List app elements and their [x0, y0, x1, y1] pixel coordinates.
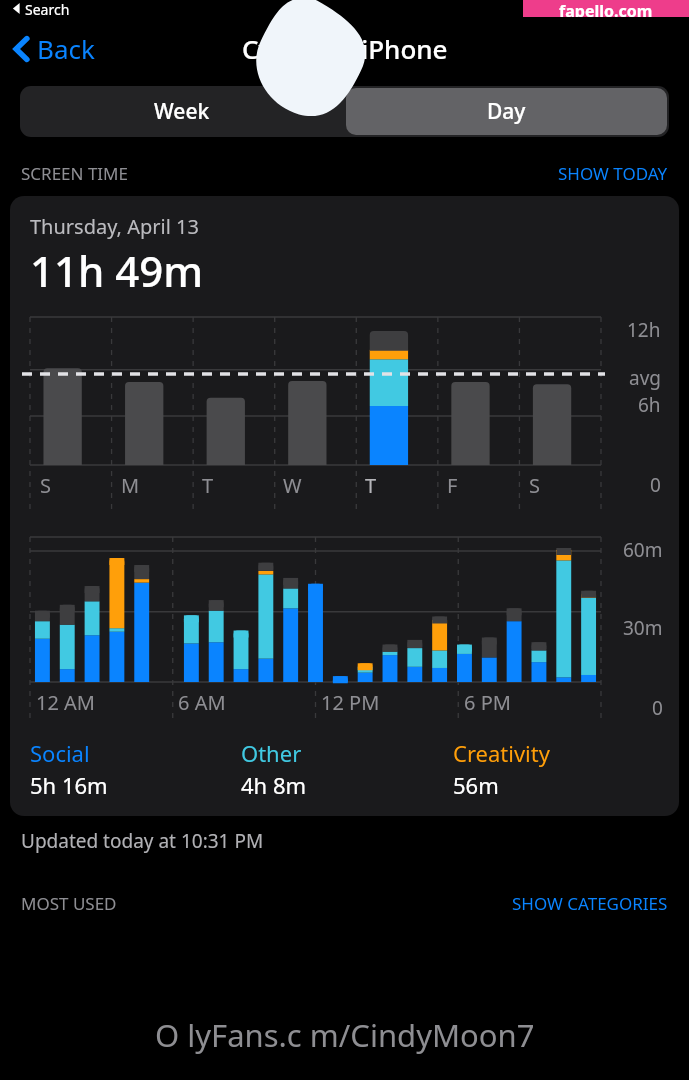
- staticText: F: [447, 472, 458, 499]
- staticText: 12 PM: [321, 689, 380, 716]
- button[interactable]: Back: [8, 26, 101, 71]
- staticText: 30m: [623, 615, 663, 641]
- staticText: 4h 8m: [241, 770, 307, 800]
- staticText: 0: [650, 472, 661, 498]
- staticText: avg: [629, 365, 661, 391]
- staticText: Other: [241, 738, 302, 768]
- staticText: 6h: [638, 392, 661, 418]
- button[interactable]: SHOW TODAY: [558, 162, 668, 185]
- button[interactable]: Other: [241, 738, 453, 800]
- staticText: 6 AM: [178, 689, 226, 716]
- staticText: Creativity: [453, 738, 550, 768]
- staticText: T: [202, 472, 214, 499]
- staticText: SHOW CATEGORIES: [512, 892, 668, 915]
- staticText: Updated today at 10:31 PM: [21, 828, 264, 854]
- staticText: fapello.com: [559, 0, 653, 17]
- staticText: T: [365, 472, 377, 499]
- staticText: 0: [652, 695, 663, 721]
- staticText: Thursday, April 13: [30, 213, 199, 240]
- staticText: 56m: [453, 770, 499, 800]
- button[interactable]: SHOW CATEGORIES: [512, 892, 668, 915]
- staticText: 5h 16m: [30, 770, 108, 800]
- staticText: Cynthia's iPhone: [242, 31, 448, 66]
- button[interactable]: Day: [346, 88, 667, 135]
- staticText: 6 PM: [464, 689, 511, 716]
- staticText: Social: [30, 738, 90, 768]
- staticText: Search: [25, 0, 70, 17]
- button[interactable]: Week: [20, 86, 344, 137]
- staticText: MOST USED: [21, 892, 117, 915]
- staticText: SHOW TODAY: [558, 162, 668, 185]
- staticText: S: [529, 472, 540, 499]
- staticText: 12 AM: [36, 689, 95, 716]
- staticText: Back: [37, 31, 95, 66]
- staticText: 60m: [623, 537, 663, 563]
- staticText: Day: [487, 97, 526, 126]
- button[interactable]: Creativity: [453, 738, 665, 800]
- staticText: S: [40, 472, 51, 499]
- staticText: 11h 49m: [30, 242, 204, 299]
- staticText: Week: [154, 97, 210, 126]
- staticText: M: [121, 472, 140, 499]
- staticText: W: [283, 472, 302, 499]
- button[interactable]: Social: [30, 738, 241, 800]
- button[interactable]: Thursday, April 13: [10, 196, 679, 816]
- staticText: 12h: [627, 317, 661, 343]
- staticText: SCREEN TIME: [21, 162, 128, 185]
- staticText: O lyFans.c m/CindyMoon7: [155, 1014, 535, 1056]
